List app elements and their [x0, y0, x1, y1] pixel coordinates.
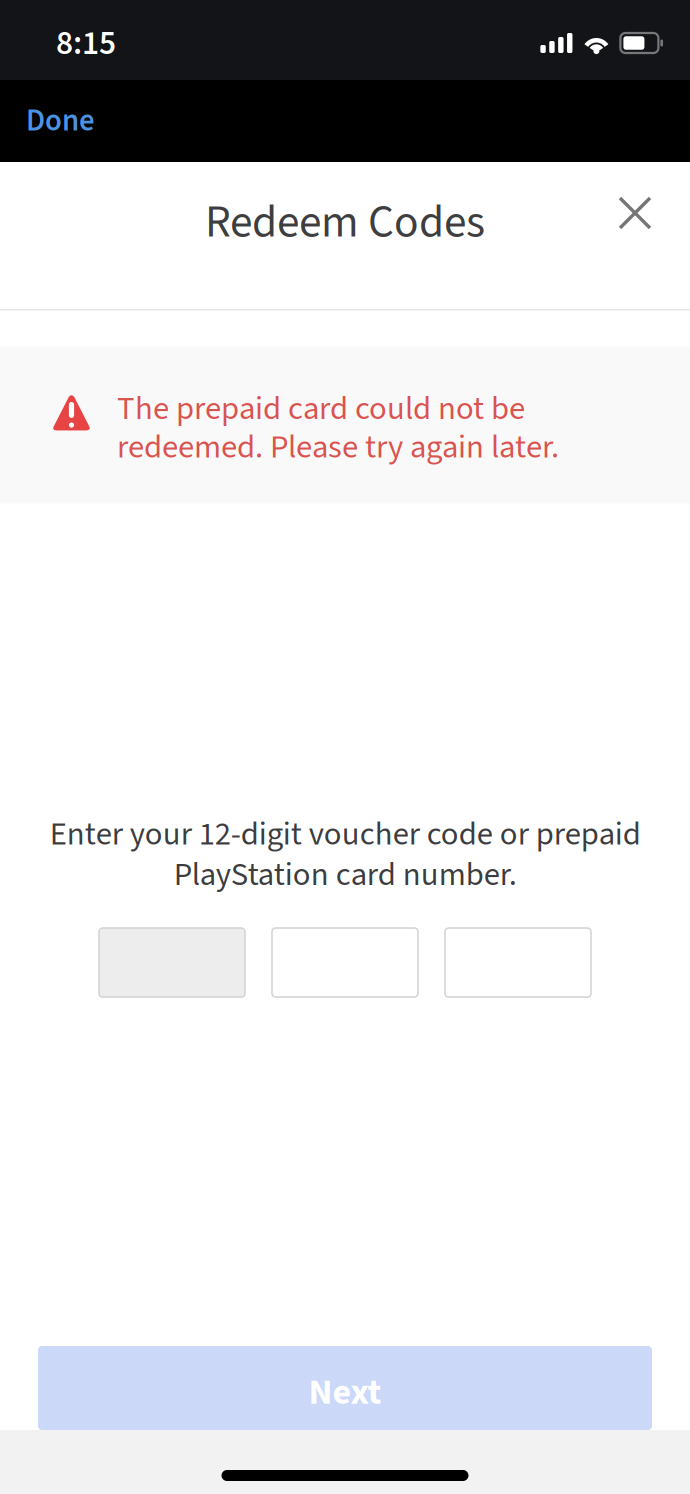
staticText: 8:15	[56, 20, 116, 67]
button[interactable]: Close	[604, 182, 666, 244]
staticText: Next	[308, 1367, 381, 1418]
button[interactable]: Voucher code group 2	[272, 928, 418, 997]
staticText: Enter your 12-digit voucher code or prep…	[49, 811, 640, 898]
button[interactable]: Voucher code group 3	[445, 928, 591, 997]
staticText: Redeem Codes	[205, 190, 485, 255]
button[interactable]: Voucher code group 1	[99, 928, 245, 997]
button[interactable]: Next	[38, 1346, 652, 1430]
button[interactable]: Done	[0, 85, 121, 157]
staticText: Done	[26, 99, 95, 143]
staticText: The prepaid card could not be redeemed. …	[117, 385, 559, 470]
